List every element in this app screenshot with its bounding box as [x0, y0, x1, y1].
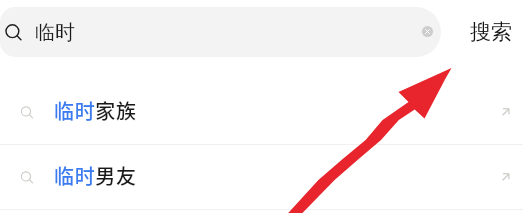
button[interactable]: Fill in search box: [494, 165, 520, 191]
button[interactable]: 临时: [0, 7, 441, 57]
button[interactable]: Clear search text: [422, 26, 433, 37]
staticText: 搜索: [470, 19, 512, 45]
button[interactable]: 搜索: [464, 7, 523, 57]
staticText: 临时: [35, 20, 75, 45]
button[interactable]: 临时男友: [0, 145, 523, 210]
button[interactable]: 临时家族: [0, 80, 523, 145]
staticText: 临时家族: [54, 96, 137, 125]
staticText: 临时男友: [54, 161, 137, 190]
button[interactable]: Fill in search box: [494, 100, 520, 126]
